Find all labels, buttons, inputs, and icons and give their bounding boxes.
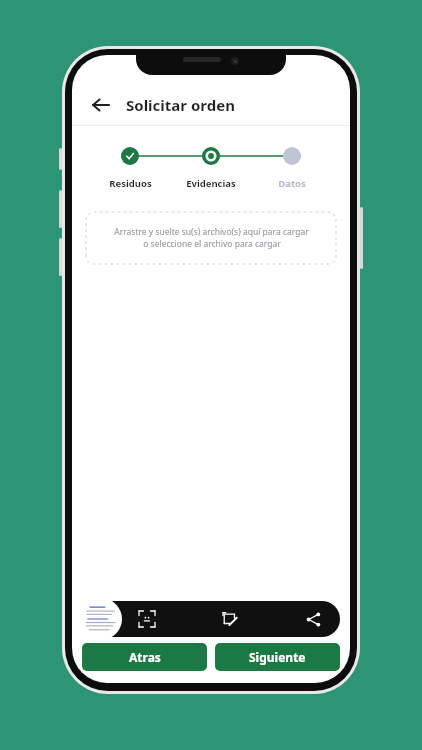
button[interactable]: Back bbox=[88, 92, 114, 118]
staticText: o seleccione el archivo para cargar bbox=[143, 238, 281, 250]
button[interactable]: Residuos step completed bbox=[121, 147, 139, 165]
staticText: Residuos bbox=[109, 177, 152, 190]
button[interactable]: Document preview bbox=[80, 598, 122, 640]
staticText: Datos bbox=[278, 177, 306, 190]
button[interactable]: Atras bbox=[82, 643, 207, 671]
staticText: Siguiente bbox=[249, 649, 306, 665]
button[interactable]: Evidencias step current bbox=[202, 147, 220, 165]
button[interactable]: Datos step bbox=[283, 147, 301, 165]
button[interactable]: Scan bbox=[134, 606, 160, 632]
button[interactable]: Arrastre y suelte su(s) archivo(s) aquí … bbox=[86, 212, 336, 264]
button[interactable]: Share bbox=[300, 606, 326, 632]
button[interactable]: Siguiente bbox=[215, 643, 340, 671]
staticText: Solicitar orden bbox=[126, 95, 235, 115]
button[interactable]: Edit shape bbox=[217, 606, 243, 632]
staticText: Arrastre y suelte su(s) archivo(s) aquí … bbox=[114, 226, 309, 238]
staticText: Evidencias bbox=[186, 177, 236, 190]
staticText: Atras bbox=[129, 649, 161, 665]
